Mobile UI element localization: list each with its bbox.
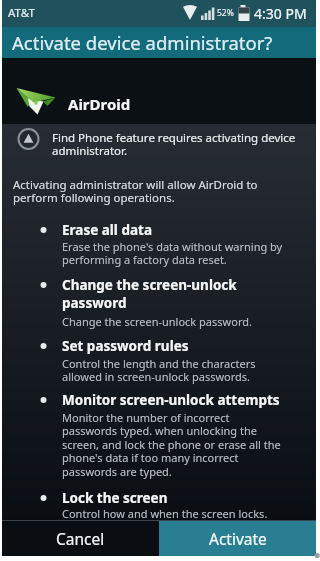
staticText: Change the screen-unlock password.	[62, 314, 252, 329]
staticText: Erase all data	[62, 221, 152, 239]
staticText: Find Phone feature requires activating d…	[52, 130, 296, 146]
staticText: Change the screen-unlock	[62, 276, 237, 294]
staticText: password	[62, 294, 127, 312]
staticText: perform following operations.	[13, 190, 175, 206]
staticText: passwords typed. when unlocking the	[62, 423, 257, 438]
staticText: Control how and when the screen locks.	[62, 506, 268, 521]
staticText: Activate device administrator?	[12, 30, 273, 54]
staticText: AirDroid	[68, 94, 131, 114]
staticText: Cancel	[56, 528, 105, 549]
staticText: phone's data if too many incorrect	[62, 450, 239, 465]
staticText: performing a factory data reset.	[62, 252, 227, 267]
staticText: Monitor the number of incorrect	[62, 410, 230, 425]
staticText: 52%	[217, 7, 234, 19]
staticText: 4:30 PM	[254, 4, 307, 23]
staticText: screen, and lock the phone or erase all …	[62, 437, 281, 452]
staticText: passwords are typed.	[62, 464, 172, 479]
staticText: AT&T	[8, 5, 35, 21]
staticText: Activate	[209, 528, 267, 549]
staticText: Erase the phone's data without warning b…	[62, 239, 283, 254]
staticText: Lock the screen	[62, 489, 168, 507]
staticText: Activating administrator will allow AirD…	[13, 177, 258, 193]
staticText: administrator.	[52, 143, 128, 159]
staticText: Control the length and the characters	[62, 356, 256, 371]
staticText: Monitor screen-unlock attempts	[62, 391, 280, 409]
staticText: allowed in screen-unlock passwords.	[62, 369, 251, 384]
staticText: Set password rules	[62, 337, 189, 355]
